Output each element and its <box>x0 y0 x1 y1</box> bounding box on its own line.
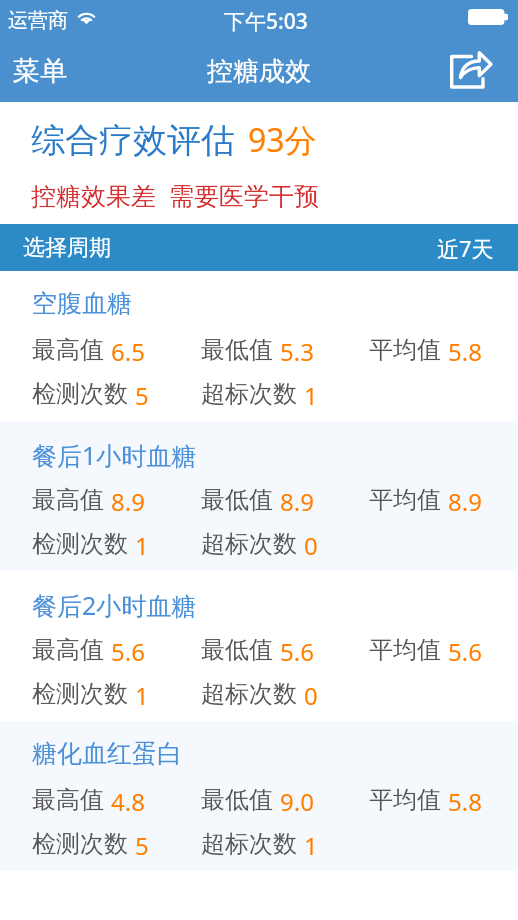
staticText: 下午5:03 <box>224 7 308 36</box>
staticText: 5 <box>135 829 149 862</box>
button[interactable]: 空腹血糖 <box>0 271 518 421</box>
staticText: 空腹血糖 <box>32 288 132 319</box>
staticText: 综合疗效评估 <box>31 119 235 162</box>
button[interactable]: Share <box>438 44 518 98</box>
staticText: 1 <box>135 679 149 712</box>
button[interactable]: 餐后1小时血糖 <box>0 421 518 571</box>
staticText: 最高值 <box>32 785 104 815</box>
staticText: 5.6 <box>111 635 145 668</box>
staticText: 平均值 <box>369 335 441 365</box>
staticText: 8.9 <box>111 485 145 518</box>
button[interactable]: 糖化血红蛋白 <box>0 721 518 871</box>
staticText: 5 <box>135 379 149 412</box>
staticText: 4.8 <box>111 785 145 818</box>
staticText: 5.3 <box>280 335 314 368</box>
staticText: 运营商 <box>8 8 68 33</box>
staticText: 近7天 <box>437 233 494 263</box>
staticText: 最低值 <box>201 635 273 665</box>
staticText: 5.6 <box>280 635 314 668</box>
staticText: 9.0 <box>280 785 314 818</box>
staticText: 平均值 <box>369 635 441 665</box>
staticText: 93分 <box>248 118 317 162</box>
staticText: 5.8 <box>448 335 482 368</box>
staticText: 最高值 <box>32 335 104 365</box>
staticText: 检测次数 <box>32 679 128 709</box>
staticText: 检测次数 <box>32 829 128 859</box>
staticText: 8.9 <box>448 485 482 518</box>
staticText: 最低值 <box>201 485 273 515</box>
staticText: 最低值 <box>201 335 273 365</box>
staticText: 超标次数 <box>201 379 297 409</box>
staticText: 1 <box>304 829 318 862</box>
staticText: 菜单 <box>13 54 67 88</box>
button[interactable]: 选择周期 <box>0 224 518 271</box>
staticText: 超标次数 <box>201 829 297 859</box>
staticText: 6.5 <box>111 335 145 368</box>
button[interactable]: 菜单 <box>0 42 83 100</box>
staticText: 餐后1小时血糖 <box>32 438 197 472</box>
staticText: 0 <box>304 529 318 562</box>
staticText: 平均值 <box>369 485 441 515</box>
staticText: 5.8 <box>448 785 482 818</box>
staticText: 最低值 <box>201 785 273 815</box>
staticText: 8.9 <box>280 485 314 518</box>
staticText: 检测次数 <box>32 529 128 559</box>
staticText: 餐后2小时血糖 <box>32 588 197 622</box>
staticText: 超标次数 <box>201 529 297 559</box>
staticText: 选择周期 <box>23 234 111 262</box>
staticText: 检测次数 <box>32 379 128 409</box>
staticText: 1 <box>304 379 318 412</box>
staticText: 控糖效果差 需要医学干预 <box>31 178 320 212</box>
staticText: 1 <box>135 529 149 562</box>
button[interactable]: 餐后2小时血糖 <box>0 571 518 721</box>
staticText: 平均值 <box>369 785 441 815</box>
staticText: 最高值 <box>32 635 104 665</box>
staticText: 最高值 <box>32 485 104 515</box>
staticText: 超标次数 <box>201 679 297 709</box>
staticText: 5.6 <box>448 635 482 668</box>
staticText: 糖化血红蛋白 <box>32 738 182 769</box>
staticText: 控糖成效 <box>207 55 311 88</box>
staticText: 0 <box>304 679 318 712</box>
